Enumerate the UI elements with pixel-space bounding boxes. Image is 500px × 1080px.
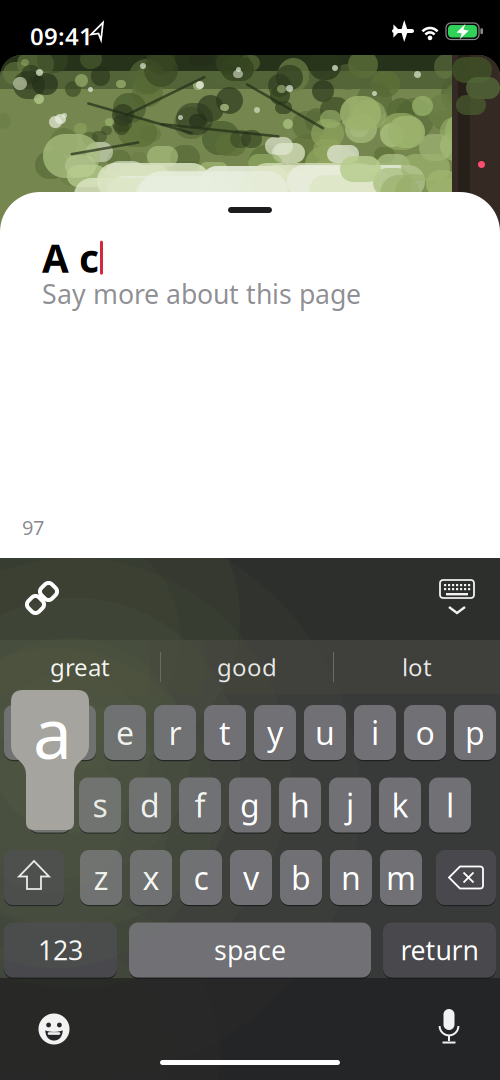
staticText: Say more about this page bbox=[42, 276, 361, 311]
staticText: r bbox=[168, 711, 181, 754]
button[interactable] bbox=[4, 850, 64, 905]
button[interactable]: great bbox=[0, 640, 160, 694]
staticText: 97 bbox=[22, 514, 44, 541]
staticText: return bbox=[400, 932, 478, 968]
button[interactable]: k bbox=[379, 777, 421, 832]
staticText: h bbox=[290, 784, 310, 826]
button[interactable]: good bbox=[161, 640, 333, 694]
button[interactable]: l bbox=[429, 777, 471, 832]
staticText: s bbox=[92, 784, 107, 826]
button[interactable]: 123 bbox=[4, 922, 117, 977]
button[interactable]: e bbox=[104, 705, 146, 760]
staticText: d bbox=[140, 784, 160, 826]
button[interactable]: c bbox=[180, 850, 222, 905]
staticText: x bbox=[142, 856, 159, 899]
staticText: 123 bbox=[38, 932, 83, 968]
button[interactable]: n bbox=[330, 850, 372, 905]
button[interactable]: d bbox=[129, 777, 171, 832]
button[interactable]: f bbox=[179, 777, 221, 832]
button[interactable]: z bbox=[80, 850, 122, 905]
button[interactable]: o bbox=[404, 705, 446, 760]
staticText: lot bbox=[402, 651, 432, 683]
staticText: w bbox=[62, 711, 87, 754]
staticText: c bbox=[193, 856, 208, 899]
staticText: k bbox=[391, 784, 408, 826]
button[interactable]: m bbox=[380, 850, 422, 905]
staticText: y bbox=[267, 711, 283, 754]
button[interactable] bbox=[439, 578, 475, 618]
button[interactable]: return bbox=[383, 922, 496, 977]
button[interactable]: a bbox=[29, 777, 71, 832]
button[interactable]: w bbox=[54, 705, 96, 760]
button[interactable]: q bbox=[4, 705, 46, 760]
button[interactable]: b bbox=[280, 850, 322, 905]
staticText: j bbox=[346, 784, 354, 826]
staticText: g bbox=[240, 784, 260, 826]
button[interactable] bbox=[26, 582, 60, 616]
button[interactable]: u bbox=[304, 705, 346, 760]
staticText: e bbox=[116, 711, 134, 754]
button[interactable]: h bbox=[279, 777, 321, 832]
staticText: u bbox=[315, 711, 335, 754]
button[interactable]: lot bbox=[334, 640, 500, 694]
staticText: z bbox=[93, 856, 108, 899]
staticText: a bbox=[33, 686, 72, 778]
staticText: A c bbox=[42, 232, 99, 283]
button[interactable]: i bbox=[354, 705, 396, 760]
staticText: space bbox=[214, 932, 286, 968]
staticText: m bbox=[386, 856, 416, 899]
button[interactable]: t bbox=[204, 705, 246, 760]
staticText: 09:41 bbox=[30, 20, 93, 52]
staticText: o bbox=[415, 711, 434, 754]
staticText: n bbox=[341, 856, 361, 899]
staticText: f bbox=[194, 784, 205, 826]
staticText: good bbox=[217, 651, 277, 683]
staticText: t bbox=[219, 711, 231, 754]
button[interactable] bbox=[38, 1013, 70, 1045]
staticText: l bbox=[446, 784, 454, 826]
button[interactable]: r bbox=[154, 705, 196, 760]
button[interactable] bbox=[437, 1008, 461, 1048]
staticText: p bbox=[465, 711, 485, 754]
button[interactable]: y bbox=[254, 705, 296, 760]
button[interactable]: s bbox=[79, 777, 121, 832]
button[interactable]: x bbox=[130, 850, 172, 905]
button[interactable]: v bbox=[230, 850, 272, 905]
staticText: v bbox=[243, 856, 259, 899]
button[interactable]: space bbox=[129, 922, 371, 977]
staticText: great bbox=[50, 651, 110, 683]
button[interactable]: p bbox=[454, 705, 496, 760]
button[interactable]: j bbox=[329, 777, 371, 832]
staticText: i bbox=[371, 711, 379, 754]
button[interactable]: g bbox=[229, 777, 271, 832]
button[interactable] bbox=[436, 850, 496, 905]
staticText: b bbox=[291, 856, 311, 899]
